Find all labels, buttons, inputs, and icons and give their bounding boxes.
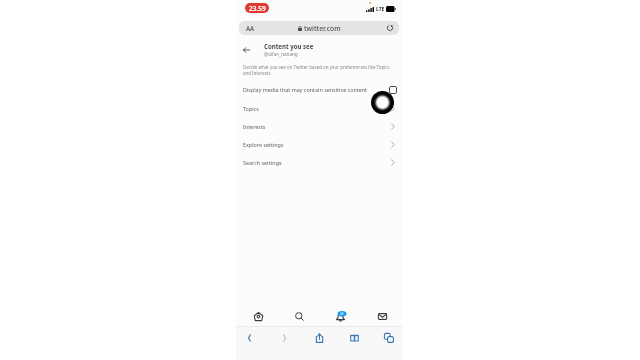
staticText: AA xyxy=(246,24,255,32)
staticText: Content you see xyxy=(264,42,314,50)
button[interactable]: Back xyxy=(240,43,253,56)
button[interactable]: Search xyxy=(287,306,311,326)
staticText: Search settings xyxy=(243,159,391,166)
button[interactable]: AA xyxy=(239,21,399,35)
button[interactable]: Display media that may contain sensitive… xyxy=(236,81,402,97)
button[interactable]: Notifications xyxy=(328,306,352,326)
button[interactable]: Topics xyxy=(236,100,402,117)
staticText: Display media that may contain sensitive… xyxy=(243,86,388,93)
button[interactable]: Forward xyxy=(272,328,296,347)
staticText: Interests xyxy=(243,123,391,130)
staticText: Explore settings xyxy=(243,141,391,148)
staticText: twitter.com xyxy=(304,24,341,33)
staticText: LTE xyxy=(376,6,385,13)
staticText: @olfan_nanang xyxy=(264,51,298,57)
staticText: 23.59 xyxy=(249,4,266,13)
button[interactable]: Back xyxy=(237,328,261,347)
other: Reload page xyxy=(386,24,394,32)
button[interactable]: Search settings xyxy=(236,154,402,171)
button[interactable]: Messages xyxy=(370,306,394,326)
button[interactable]: Tabs xyxy=(377,328,401,347)
button[interactable]: Interests xyxy=(236,118,402,135)
button[interactable]: Home xyxy=(246,306,270,326)
button[interactable]: Explore settings xyxy=(236,136,402,153)
button[interactable]: Share xyxy=(307,328,331,347)
staticText: Topics xyxy=(243,105,391,112)
button[interactable]: Bookmarks xyxy=(342,328,366,347)
staticText: Decide what you see on Twitter based on … xyxy=(243,64,395,76)
